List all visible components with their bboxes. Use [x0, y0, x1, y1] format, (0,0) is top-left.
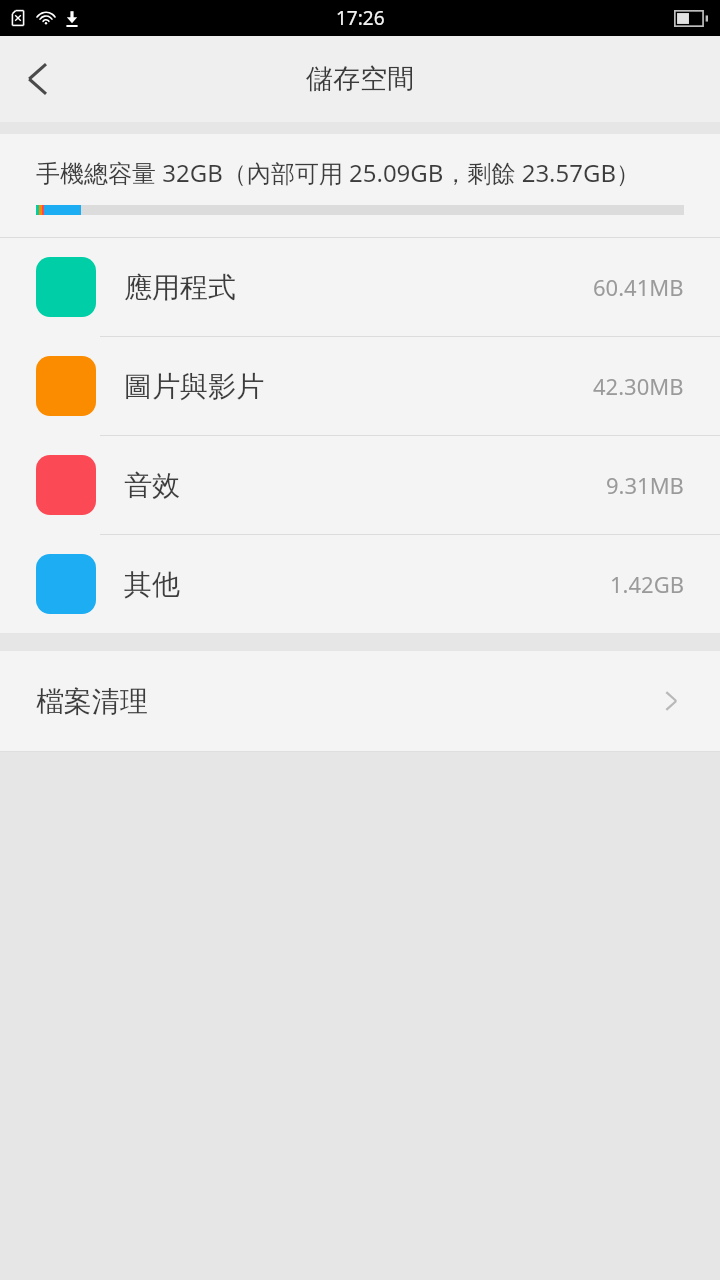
- button[interactable]: 圖片與影片: [0, 337, 720, 436]
- staticText: 檔案清理: [36, 684, 148, 719]
- staticText: 音效: [124, 468, 606, 503]
- staticText: 1.42GB: [610, 569, 684, 599]
- staticText: 其他: [124, 567, 610, 602]
- button[interactable]: 應用程式: [0, 238, 720, 337]
- staticText: 60.41MB: [593, 272, 684, 302]
- staticText: 應用程式: [124, 270, 593, 305]
- button[interactable]: Back: [0, 36, 86, 122]
- staticText: 42.30MB: [593, 371, 684, 401]
- staticText: 手機總容量 32GB（內部可用 25.09GB，剩餘 23.57GB）: [36, 156, 641, 189]
- staticText: 儲存空間: [306, 62, 414, 96]
- button[interactable]: 檔案清理: [0, 651, 720, 751]
- staticText: 圖片與影片: [124, 369, 593, 404]
- button[interactable]: 其他: [0, 535, 720, 633]
- button[interactable]: 音效: [0, 436, 720, 535]
- staticText: 17:26: [336, 5, 385, 31]
- staticText: 9.31MB: [606, 470, 684, 500]
